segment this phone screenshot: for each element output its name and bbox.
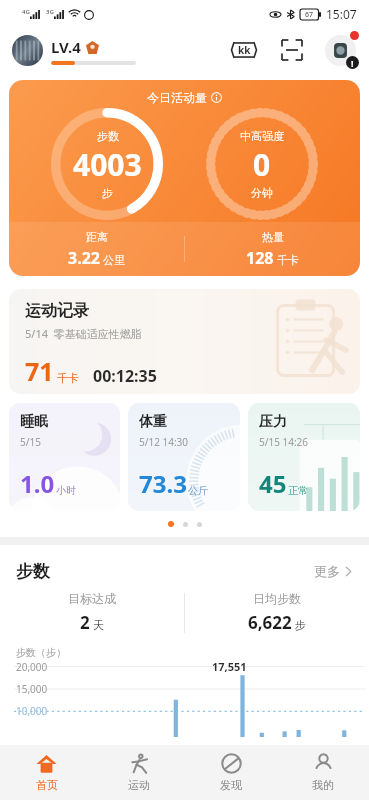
staticText: 发现 [220, 778, 242, 792]
staticText: 小时 [56, 484, 76, 497]
staticText: 67 [305, 10, 314, 20]
staticText: 128 [246, 247, 274, 269]
staticText: 中高强度 [240, 129, 284, 143]
button[interactable]: LV.4 [12, 35, 136, 66]
staticText: 4G [22, 8, 30, 16]
staticText: 3G [46, 8, 54, 16]
staticText: 步 [295, 618, 306, 632]
staticText: 我的 [312, 778, 334, 792]
staticText: 正常 [288, 484, 308, 497]
staticText: 更多 [314, 563, 340, 579]
staticText: 73.3 [139, 467, 187, 500]
button[interactable]: 睡眠 [9, 403, 120, 511]
staticText: 5/12 14:30 [139, 435, 189, 449]
staticText: 千卡 [277, 253, 299, 267]
button[interactable]: Device [321, 31, 359, 69]
button[interactable]: KK [227, 33, 261, 67]
staticText: ! [351, 57, 354, 69]
staticText: 距离 [86, 230, 108, 244]
staticText: 15,000 [16, 682, 48, 696]
button[interactable]: 体重 [128, 403, 240, 511]
staticText: 日均步数 [253, 591, 301, 606]
staticText: 5/15 14:26 [259, 435, 309, 449]
staticText: 步 [102, 186, 113, 200]
staticText: 压力 [259, 413, 287, 431]
staticText: 步数（步） [16, 646, 66, 659]
staticText: 71 [25, 354, 54, 388]
button[interactable]: 运动 [93, 745, 185, 800]
staticText: 15:07 [326, 6, 357, 22]
staticText: 体重 [139, 413, 167, 431]
staticText: 运动记录 [25, 301, 89, 321]
staticText: 首页 [36, 778, 58, 792]
staticText: 步数 [16, 561, 50, 582]
staticText: 千卡 [57, 371, 79, 385]
staticText: 目标达成 [68, 591, 116, 606]
staticText: 公斤 [188, 484, 208, 497]
staticText: 0 [253, 144, 271, 185]
staticText: 热量 [262, 230, 284, 244]
button[interactable]: 发现 [185, 745, 277, 800]
staticText: 17,551 [212, 659, 247, 674]
staticText: 公里 [103, 253, 125, 267]
staticText: 10,000 [16, 704, 48, 718]
staticText: 5/14 零基础适应性燃脂 [25, 326, 142, 341]
staticText: 今日活动量 [147, 90, 207, 105]
staticText: 2 [80, 611, 90, 634]
staticText: 3.22 [68, 247, 100, 269]
button[interactable]: 压力 [248, 403, 360, 511]
staticText: 1.0 [20, 467, 55, 500]
staticText: 天 [93, 618, 104, 632]
staticText: 睡眠 [20, 413, 48, 431]
staticText: kk [238, 43, 251, 57]
staticText: 45 [259, 467, 287, 500]
button[interactable]: 运动记录 [9, 289, 360, 394]
staticText: 20,000 [16, 660, 48, 674]
button[interactable]: 更多 [310, 559, 357, 583]
button[interactable]: Scan [275, 33, 309, 67]
staticText: 5/15 [20, 435, 41, 449]
staticText: LV.4 [51, 37, 81, 57]
button[interactable]: 今日活动量 [9, 80, 360, 276]
staticText: 步数 [97, 129, 119, 143]
staticText: 分钟 [251, 186, 273, 200]
staticText: 运动 [128, 778, 150, 792]
staticText: 4003 [73, 144, 142, 185]
staticText: 00:12:35 [93, 365, 157, 387]
button[interactable]: 我的 [277, 745, 369, 800]
button[interactable]: 首页 [0, 745, 93, 800]
staticText: 6,622 [248, 611, 292, 634]
